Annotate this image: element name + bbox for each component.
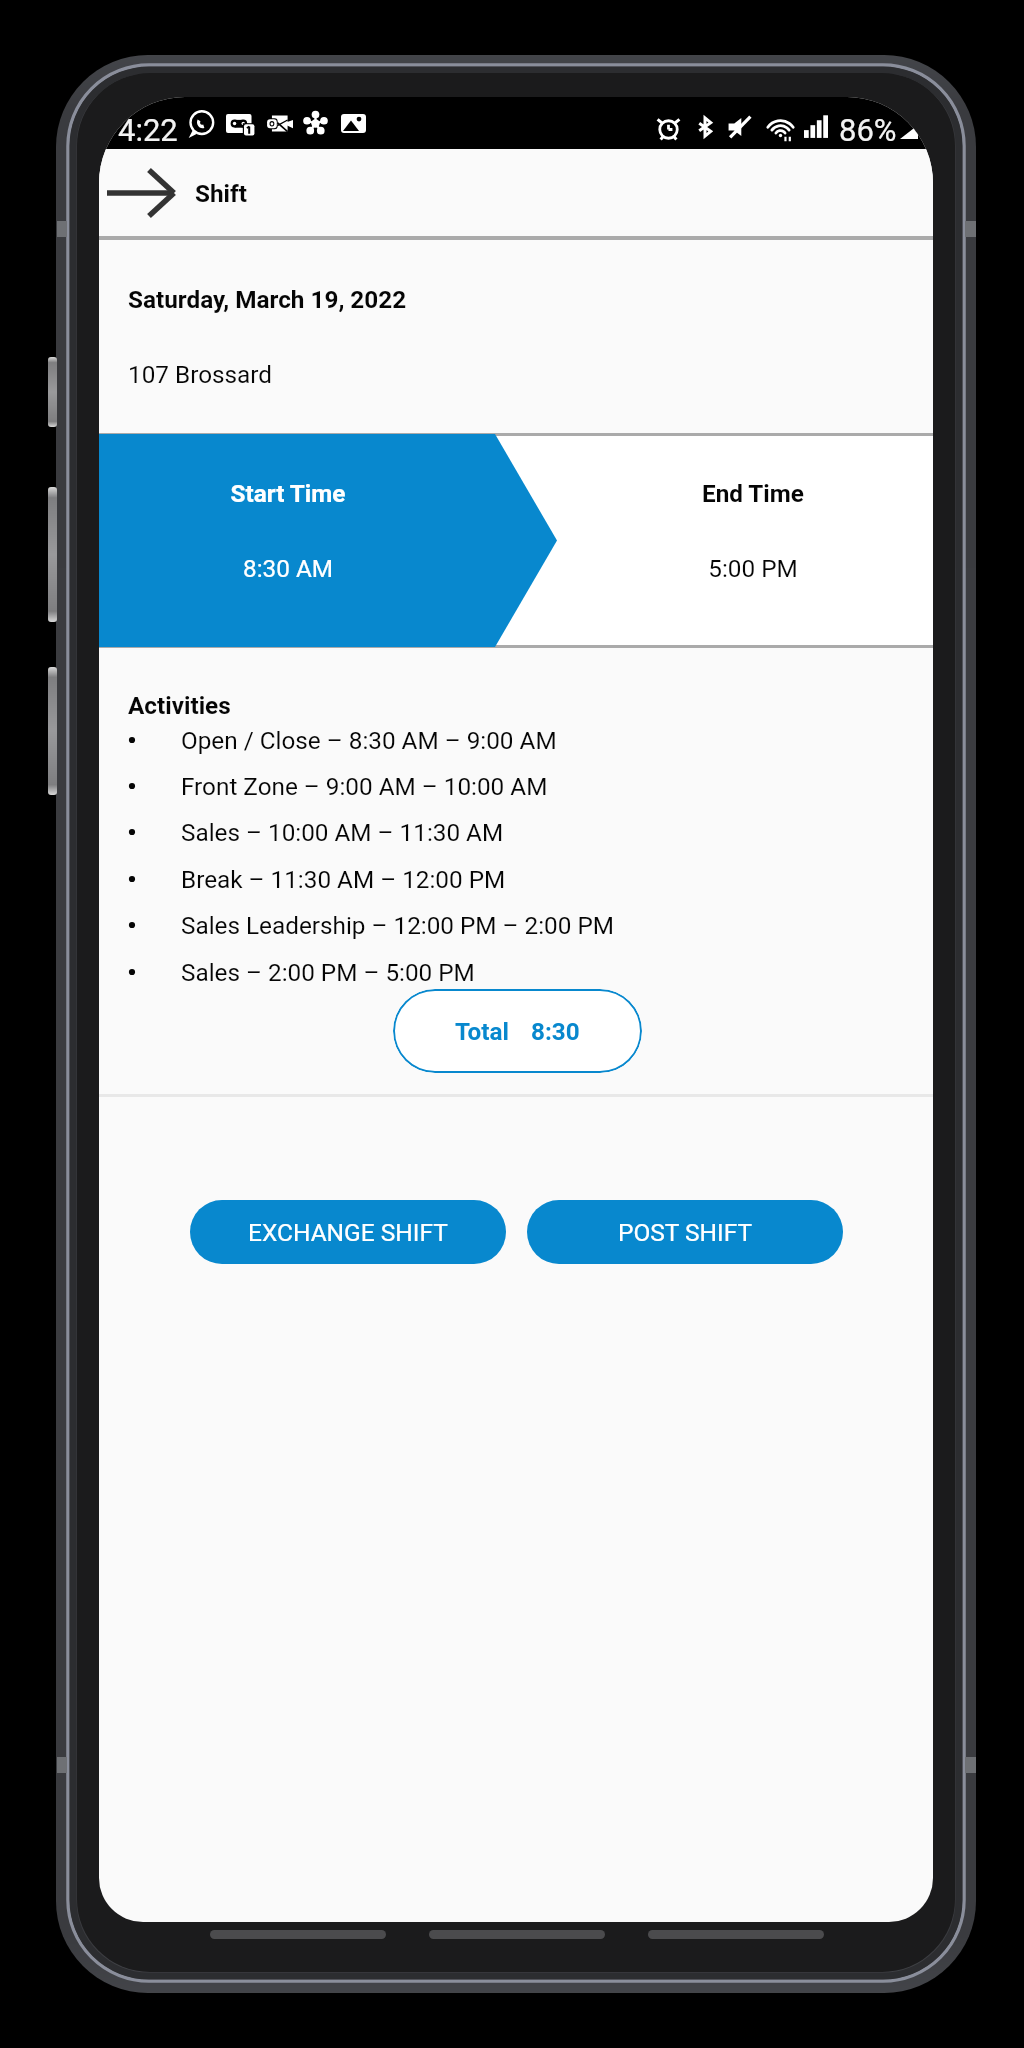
- staticText: Sales – 10:00 AM – 11:30 AM: [181, 818, 504, 846]
- staticText: 107 Brossard: [128, 360, 272, 388]
- staticText: EXCHANGE SHIFT: [248, 1218, 448, 1247]
- staticText: Open / Close – 8:30 AM – 9:00 AM: [181, 726, 557, 754]
- button[interactable]: Back: [99, 149, 189, 237]
- staticText: Activities: [128, 691, 231, 719]
- staticText: Sales Leadership – 12:00 PM – 2:00 PM: [181, 911, 614, 939]
- staticText: 8:30 AM: [138, 554, 438, 582]
- staticText: 86%: [839, 112, 897, 148]
- staticText: 8:30: [531, 1017, 580, 1045]
- staticText: POST SHIFT: [618, 1218, 753, 1247]
- staticText: 5:00 PM: [603, 554, 903, 582]
- staticText: Saturday, March 19, 2022: [128, 285, 407, 313]
- staticText: Start Time: [138, 479, 438, 507]
- staticText: End Time: [603, 479, 903, 507]
- staticText: Break – 11:30 AM – 12:00 PM: [181, 865, 506, 893]
- staticText: Shift: [195, 179, 247, 207]
- staticText: 4:22: [118, 112, 178, 148]
- staticText: Sales – 2:00 PM – 5:00 PM: [181, 958, 475, 986]
- button[interactable]: POST SHIFT: [527, 1200, 843, 1264]
- button[interactable]: Total: [393, 989, 642, 1073]
- staticText: Front Zone – 9:00 AM – 10:00 AM: [181, 772, 548, 800]
- staticText: Total: [455, 1017, 509, 1045]
- button[interactable]: EXCHANGE SHIFT: [190, 1200, 506, 1264]
